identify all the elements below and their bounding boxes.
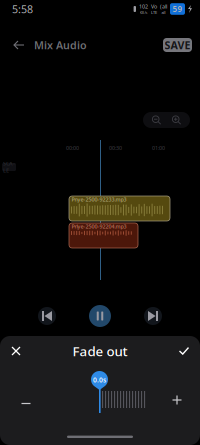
staticText: (all xyxy=(160,3,167,10)
staticText: 00:30 xyxy=(109,144,122,152)
button[interactable]: SAVE xyxy=(163,38,192,52)
button[interactable]: Skip to start xyxy=(38,307,56,325)
staticText: SAVE xyxy=(164,38,190,52)
staticText: Vo xyxy=(151,3,157,10)
staticText: Pnye-2500-92233.mp3 xyxy=(71,196,126,203)
staticText: 0.0s xyxy=(93,375,106,384)
staticText: 102 xyxy=(139,3,148,10)
button[interactable]: Cancel xyxy=(4,336,28,366)
button[interactable]: Confirm xyxy=(172,336,196,366)
staticText: 01:00 xyxy=(152,144,165,152)
staticText: Mix Audio xyxy=(34,38,87,52)
button[interactable]: Zoom in xyxy=(166,112,186,128)
staticText: 59 xyxy=(172,4,182,14)
staticText: 5:58 xyxy=(12,2,33,16)
staticText: KB/s xyxy=(139,10,147,15)
staticText: LTE xyxy=(151,10,157,15)
button[interactable]: Skip to end xyxy=(144,307,162,325)
button[interactable]: Increase xyxy=(164,387,190,413)
staticText: 00:00 xyxy=(66,144,79,152)
staticText: SCALE xyxy=(3,160,15,174)
staticText: Prlye-2500-92204.mp3 xyxy=(71,223,126,230)
staticText: Fade out xyxy=(72,342,127,360)
button[interactable]: Decrease xyxy=(13,387,39,413)
staticText: all xyxy=(161,10,165,15)
button[interactable]: Zoom out xyxy=(146,112,166,128)
button[interactable]: Pause xyxy=(89,305,111,327)
button[interactable]: Back xyxy=(8,34,30,56)
